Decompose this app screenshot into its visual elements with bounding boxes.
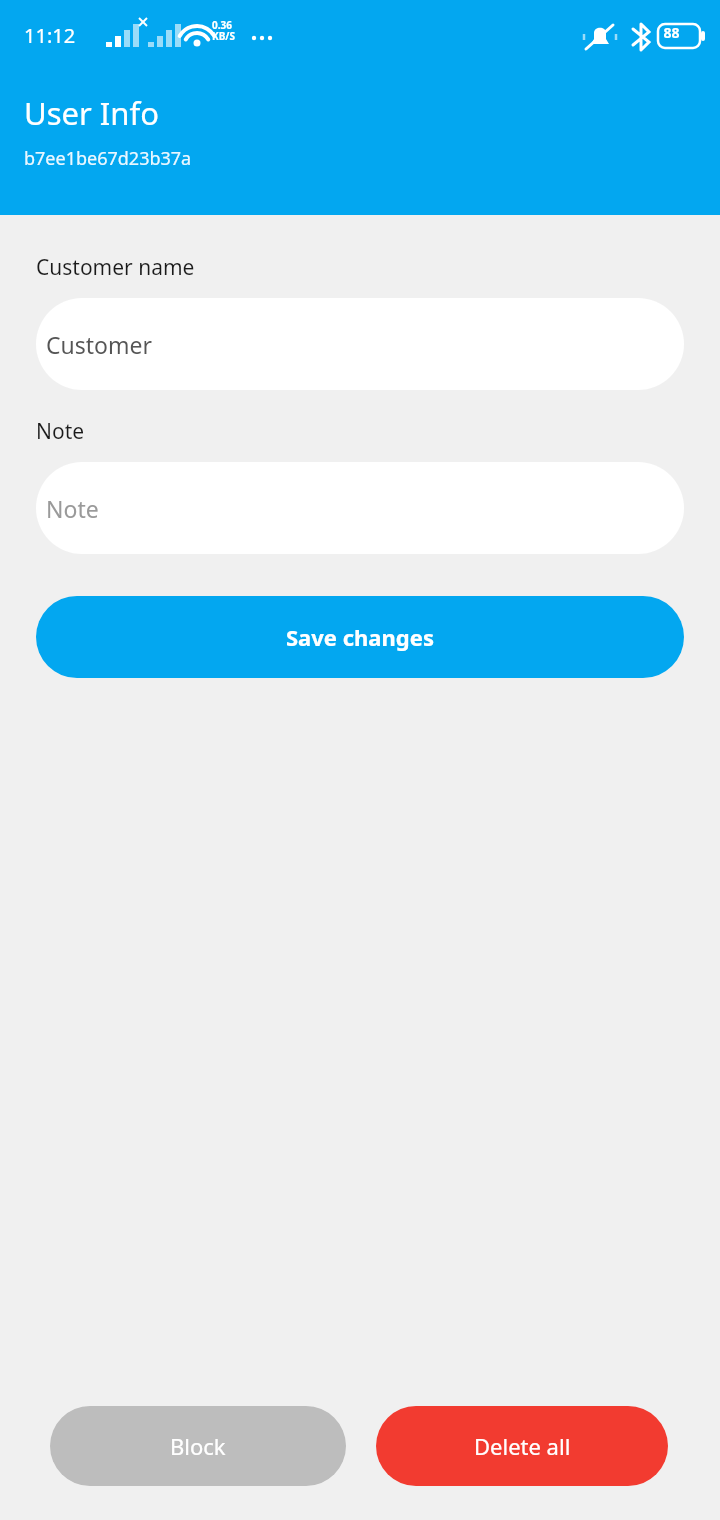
staticText: Customer — [46, 329, 152, 360]
staticText: Block — [170, 1431, 226, 1461]
button[interactable]: Note — [36, 462, 684, 554]
staticText: 0.36 KB/S — [212, 18, 235, 43]
button[interactable]: Customer — [36, 298, 684, 390]
staticText: 11:12 — [24, 22, 76, 49]
staticText: Save changes — [286, 622, 434, 652]
button[interactable]: Delete all — [376, 1406, 668, 1486]
staticText: Delete all — [474, 1431, 571, 1461]
staticText: Note — [36, 417, 85, 446]
staticText: Note — [46, 493, 99, 524]
staticText: b7ee1be67d23b37a — [24, 146, 192, 171]
button[interactable]: Block — [50, 1406, 346, 1486]
staticText: Customer name — [36, 253, 195, 282]
staticText: User Info — [24, 92, 159, 134]
button[interactable]: Save changes — [36, 596, 684, 678]
staticText: 88 — [663, 23, 680, 42]
